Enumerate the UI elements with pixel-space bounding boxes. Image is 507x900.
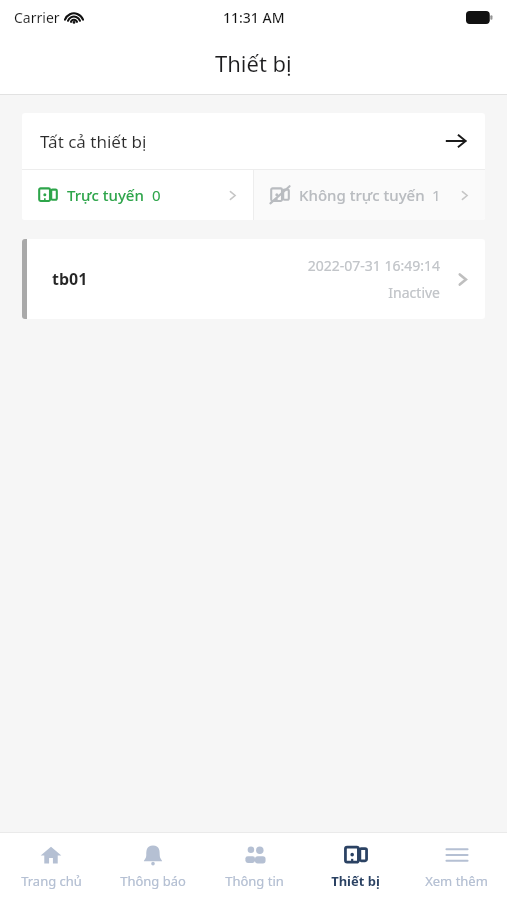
button[interactable]: Thông tin <box>204 833 305 900</box>
staticText: Tất cả thiết bị <box>40 130 147 153</box>
staticText: tb01 <box>52 268 88 290</box>
staticText: Thông tin <box>225 872 284 890</box>
button[interactable]: Tất cả thiết bị <box>22 113 485 169</box>
button[interactable]: Thông báo <box>102 833 204 900</box>
staticText: 1 <box>432 185 441 205</box>
staticText: Carrier <box>14 8 60 27</box>
staticText: 0 <box>152 185 161 205</box>
staticText: 11:31 AM <box>223 8 285 27</box>
staticText: Trực tuyến <box>67 185 144 205</box>
button[interactable]: Không trực tuyến <box>254 170 485 220</box>
staticText: Không trực tuyến <box>299 185 425 205</box>
staticText: 2022-07-31 16:49:14 <box>307 256 440 275</box>
button[interactable]: Trang chủ <box>0 833 102 900</box>
staticText: Thiết bị <box>215 48 292 78</box>
staticText: Trang chủ <box>21 872 82 890</box>
staticText: Thông báo <box>120 872 186 890</box>
staticText: Xem thêm <box>425 872 488 890</box>
button[interactable]: Thiết bị <box>305 833 406 900</box>
button[interactable]: Trực tuyến <box>22 170 253 220</box>
staticText: Inactive <box>388 283 440 302</box>
button[interactable]: Xem thêm <box>406 833 507 900</box>
button[interactable]: tb01 <box>22 239 485 319</box>
staticText: Thiết bị <box>331 872 380 890</box>
